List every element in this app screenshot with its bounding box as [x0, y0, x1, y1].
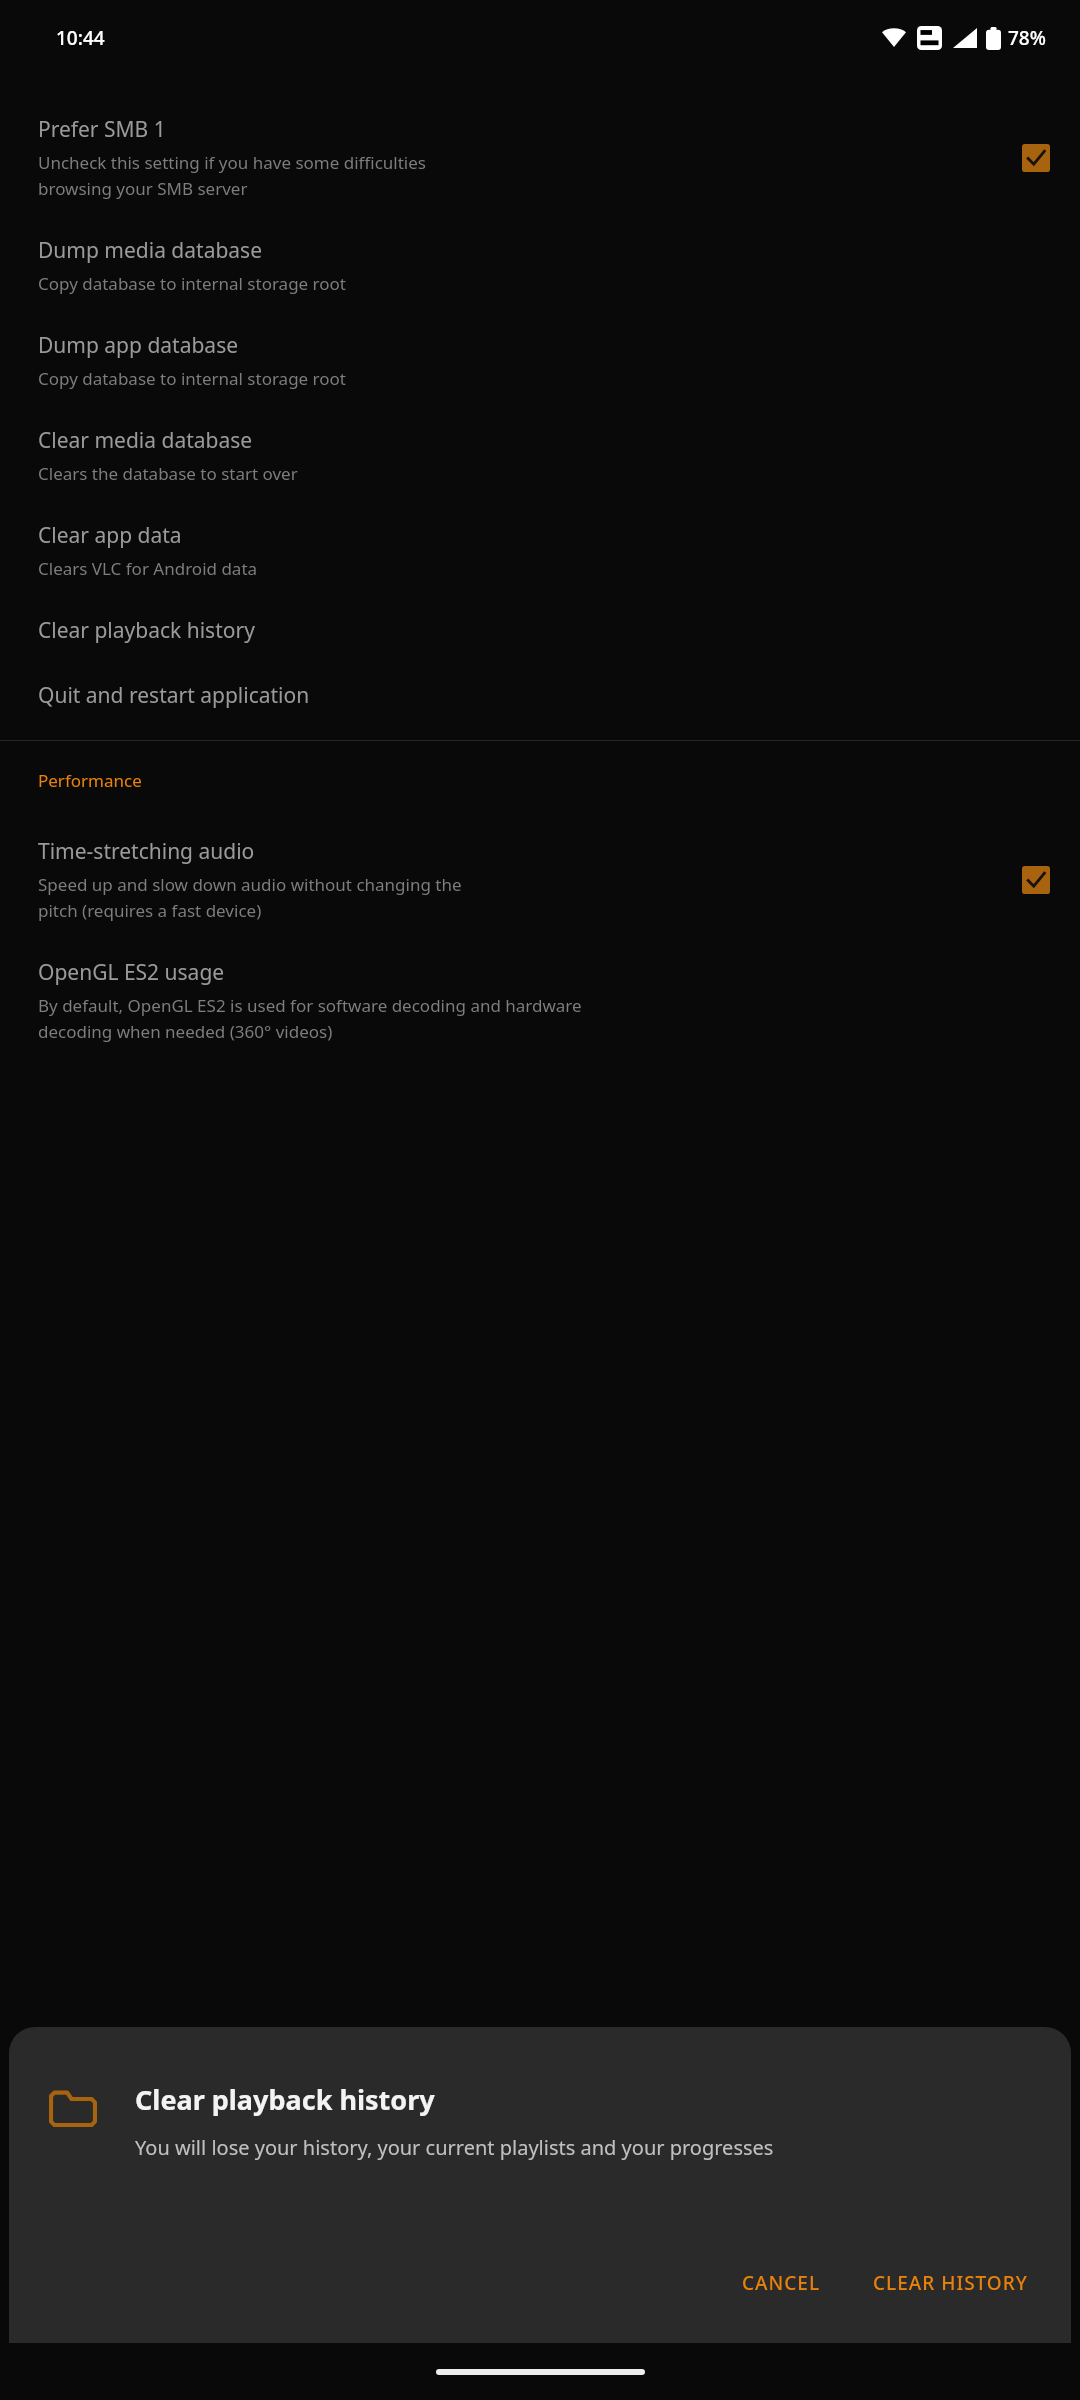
- staticText: Clears the database to start over: [38, 462, 298, 485]
- staticText: By default, OpenGL ES2 is used for softw…: [38, 994, 582, 1043]
- staticText: 10:44: [56, 25, 105, 51]
- other: Folder: [47, 2081, 99, 2133]
- staticText: Prefer SMB 1: [38, 115, 166, 144]
- staticText: Dump app database: [38, 331, 239, 360]
- button[interactable]: CLEAR HISTORY: [856, 2257, 1045, 2309]
- button[interactable]: Dump app database: [0, 313, 1080, 408]
- staticText: Time-stretching audio: [38, 837, 255, 866]
- staticText: Clear app data: [38, 521, 182, 550]
- button[interactable]: Toggle setting: [1020, 864, 1052, 896]
- button[interactable]: Toggle setting: [1020, 142, 1052, 174]
- button[interactable]: Clear media database: [0, 408, 1080, 503]
- button[interactable]: Prefer SMB 1: [0, 97, 1080, 218]
- staticText: Clear media database: [38, 426, 253, 455]
- button[interactable]: CANCEL: [725, 2257, 838, 2309]
- staticText: Clear playback history: [38, 616, 255, 645]
- button[interactable]: Time-stretching audio: [0, 819, 1080, 940]
- staticText: Dump media database: [38, 236, 263, 265]
- staticText: Clear playback history: [135, 2081, 435, 2118]
- button[interactable]: Clear app data: [0, 503, 1080, 598]
- staticText: Copy database to internal storage root: [38, 272, 347, 295]
- staticText: Clears VLC for Android data: [38, 557, 258, 580]
- staticText: Copy database to internal storage root: [38, 367, 347, 390]
- button[interactable]: Clear playback history: [0, 598, 1080, 663]
- button[interactable]: Dump media database: [0, 218, 1080, 313]
- button[interactable]: Quit and restart application: [0, 663, 1080, 728]
- staticText: You will lose your history, your current…: [135, 2134, 774, 2161]
- staticText: Uncheck this setting if you have some di…: [38, 151, 426, 200]
- staticText: Quit and restart application: [38, 681, 310, 710]
- button[interactable]: OpenGL ES2 usage: [0, 940, 1080, 1061]
- staticText: OpenGL ES2 usage: [38, 958, 225, 987]
- staticText: 78%: [1008, 25, 1046, 51]
- staticText: CANCEL: [742, 2270, 821, 2296]
- staticText: CLEAR HISTORY: [873, 2270, 1028, 2296]
- staticText: Speed up and slow down audio without cha…: [38, 873, 462, 922]
- staticText: Performance: [38, 769, 142, 792]
